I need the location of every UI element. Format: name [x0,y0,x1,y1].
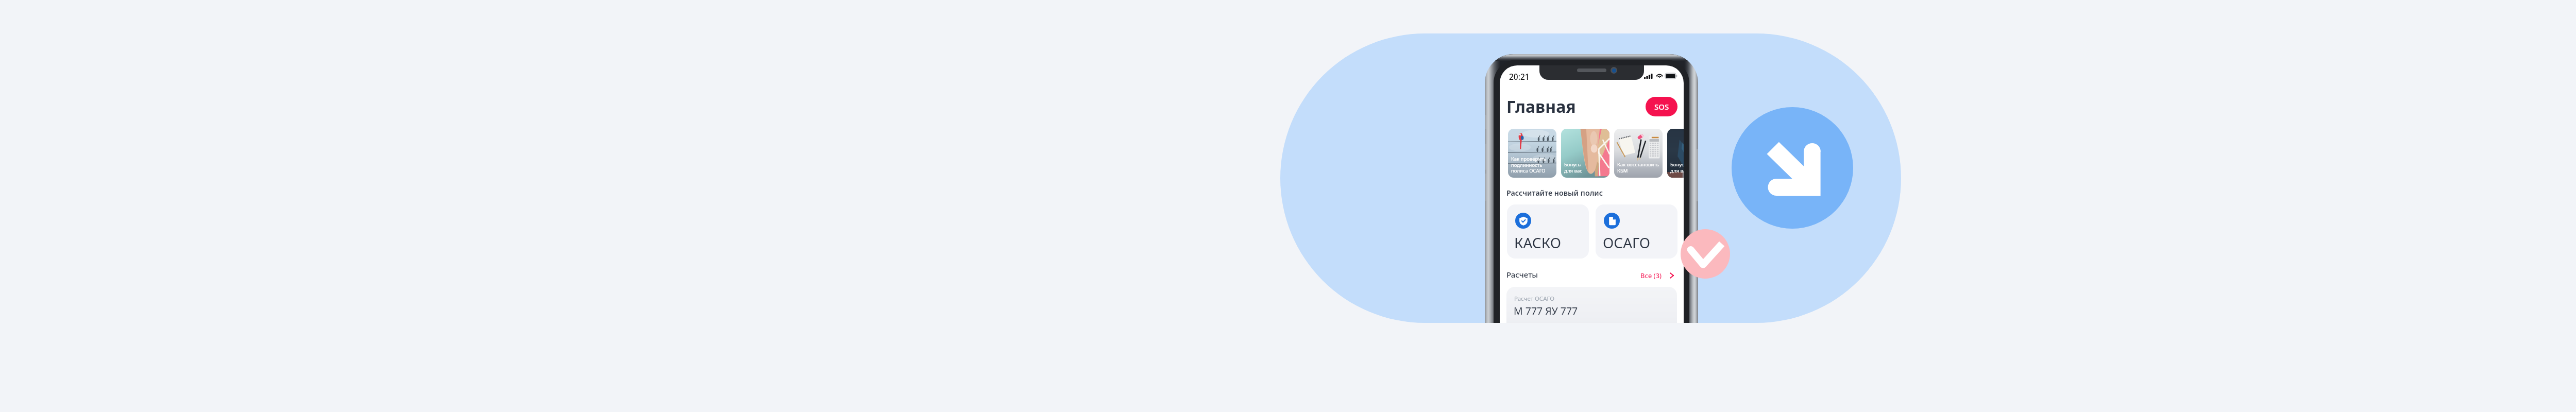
button[interactable]: Все (3) [1636,270,1684,281]
button[interactable]: Download [1732,107,1853,229]
button[interactable]: КАСКО [1507,204,1589,259]
staticText: 20:21 [1509,71,1530,82]
staticText: КАСКО [1514,233,1561,252]
button[interactable]: Бонусы для вас [1561,129,1609,178]
button[interactable]: Как проверить подлинность полиса ОСАГО [1508,129,1556,178]
staticText: Бонусы для вас [1564,161,1582,174]
button[interactable]: Расчет ОСАГО [1506,287,1677,323]
button[interactable]: Как восстановить КБМ [1614,129,1663,178]
button[interactable]: ОСАГО [1596,204,1677,259]
button[interactable]: Бонусы для вас [1667,129,1684,178]
staticText: М 777 ЯУ 777 [1514,304,1578,318]
staticText: Рассчитайте новый полис [1506,188,1603,198]
staticText: Главная [1506,95,1576,118]
staticText: Как проверить подлинность полиса ОСАГО [1511,156,1546,174]
staticText: Расчеты [1506,269,1538,280]
staticText: Как восстановить КБМ [1617,161,1659,174]
staticText: Бонусы для вас [1670,161,1684,174]
button[interactable]: Confirmed [1681,229,1730,279]
staticText: Все (3) [1640,271,1662,280]
staticText: SOS [1654,101,1669,112]
button[interactable]: SOS [1646,97,1677,116]
staticText: Расчет ОСАГО [1514,295,1554,303]
staticText: ОСАГО [1603,233,1651,252]
